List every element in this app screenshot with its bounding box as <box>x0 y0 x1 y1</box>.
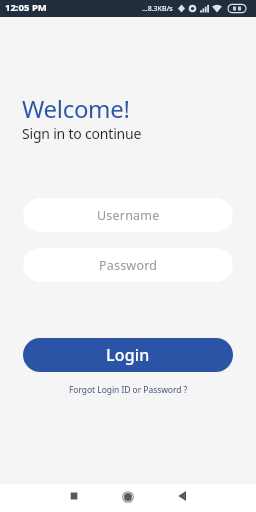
button[interactable] <box>60 482 88 510</box>
staticText: Welcome! <box>22 92 130 125</box>
button[interactable]: Password <box>23 248 233 282</box>
staticText: Password <box>99 257 158 274</box>
button[interactable]: Username <box>23 198 233 232</box>
button[interactable] <box>114 482 142 510</box>
button[interactable]: Login <box>23 338 233 372</box>
staticText: ...8.3KB/s <box>142 4 173 14</box>
staticText: Username <box>97 207 160 224</box>
button[interactable]: Forgot Login ID or Password ? <box>69 384 188 396</box>
staticText: Login <box>106 344 150 366</box>
staticText: 12:05 PM <box>5 1 47 14</box>
staticText: Sign in to continue <box>22 124 142 143</box>
button[interactable] <box>168 482 196 510</box>
